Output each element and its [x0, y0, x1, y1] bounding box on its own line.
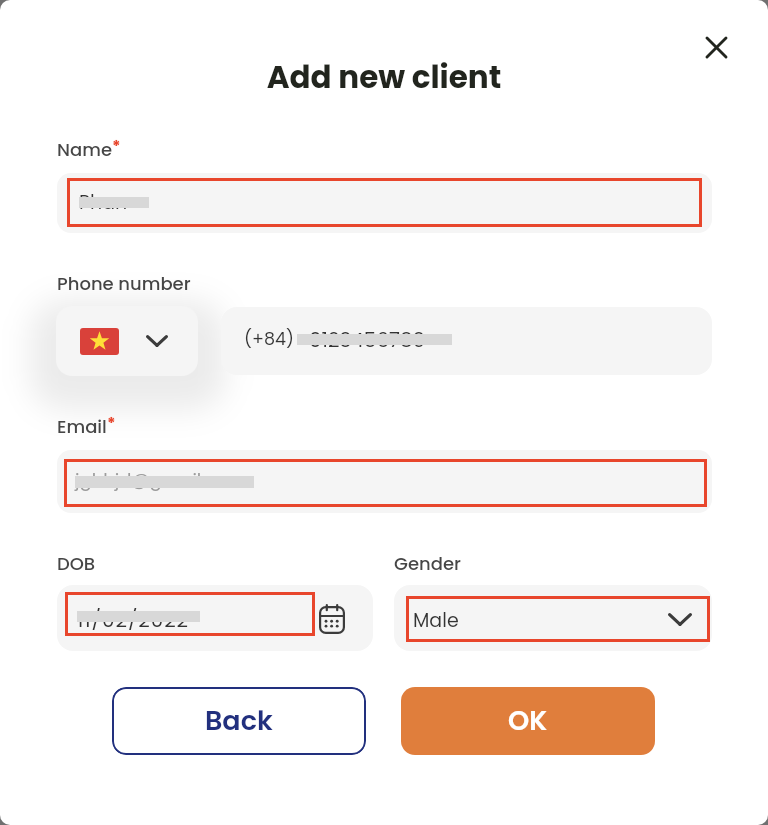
staticText: Back [205, 702, 273, 740]
button[interactable]: Select country code [56, 306, 198, 376]
staticText: (+84) [244, 327, 294, 352]
staticText: Phone number [57, 271, 191, 296]
button[interactable]: (+84) [221, 307, 712, 375]
staticText: Male [413, 607, 459, 634]
staticText: 11/02/2022 [77, 606, 189, 634]
staticText: DOB [57, 551, 96, 576]
staticText: Name [57, 137, 112, 162]
button[interactable]: OK [401, 687, 655, 755]
staticText: Gender [394, 551, 461, 576]
other: Pick date [319, 605, 345, 634]
staticText: * [107, 412, 116, 434]
staticText: * [112, 135, 121, 157]
staticText: Phan [79, 189, 128, 216]
button[interactable]: Male [394, 585, 712, 651]
staticText: OK [508, 702, 548, 740]
button[interactable]: Back [112, 687, 366, 755]
staticText: Email [57, 414, 107, 439]
staticText: jghhjd@gmail.com [75, 467, 247, 492]
button[interactable]: 11/02/2022 [57, 585, 373, 651]
button[interactable]: jghhjd@gmail.com [57, 450, 712, 513]
button[interactable]: Close [694, 25, 738, 69]
staticText: 0123456789 [309, 326, 426, 354]
button[interactable]: Phan [57, 173, 712, 233]
staticText: Add new client [0, 55, 768, 98]
